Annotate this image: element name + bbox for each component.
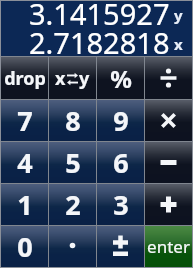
staticText: % — [110, 62, 132, 95]
button[interactable]: 8 — [49, 100, 96, 141]
staticText: 7 — [17, 102, 33, 139]
button[interactable]: 2 — [49, 184, 96, 225]
staticText: 0 — [17, 228, 33, 265]
staticText: 9 — [113, 102, 129, 139]
button[interactable]: Swap x and y — [49, 57, 96, 99]
staticText: 5 — [65, 144, 81, 181]
staticText: 2 — [65, 186, 81, 223]
staticText: x — [55, 66, 66, 91]
staticText: 1 — [17, 186, 33, 223]
button[interactable]: Plus — [145, 184, 192, 225]
staticText: 6 — [113, 144, 129, 181]
button[interactable]: Multiply — [145, 100, 192, 141]
button[interactable]: 7 — [1, 100, 48, 141]
button[interactable]: 0 — [1, 226, 48, 267]
button[interactable]: 5 — [49, 142, 96, 183]
button[interactable]: 4 — [1, 142, 48, 183]
button[interactable]: drop — [1, 57, 48, 99]
button[interactable]: enter — [145, 226, 192, 267]
button[interactable]: Minus — [145, 142, 192, 183]
button[interactable]: 9 — [97, 100, 144, 141]
button[interactable]: Decimal point — [49, 226, 96, 267]
staticText: drop — [4, 66, 46, 91]
button[interactable]: Divide — [145, 57, 192, 99]
button[interactable]: % — [97, 57, 144, 99]
staticText: enter — [147, 235, 190, 258]
button[interactable]: 1 — [1, 184, 48, 225]
button[interactable]: 3 — [97, 184, 144, 225]
button[interactable]: Plus minus — [97, 226, 144, 267]
staticText: 4 — [17, 144, 33, 181]
staticText: 8 — [65, 102, 81, 139]
staticText: y — [79, 66, 90, 91]
staticText: 3 — [113, 186, 129, 223]
button[interactable]: 6 — [97, 142, 144, 183]
